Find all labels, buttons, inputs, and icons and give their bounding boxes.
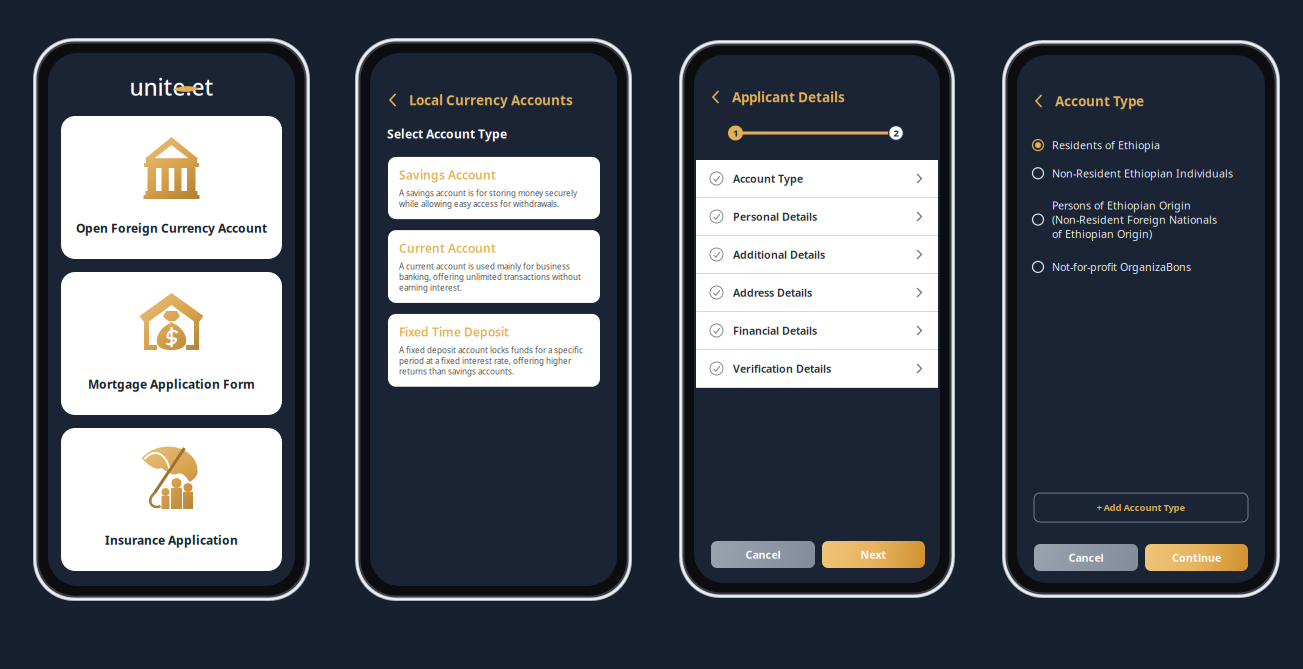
staticText: Select Account Type (387, 126, 507, 142)
button[interactable]: Insurance Application (61, 428, 282, 571)
button[interactable]: Verification Details (696, 350, 938, 388)
staticText: 1 (733, 127, 738, 139)
button[interactable]: Financial Details (696, 312, 938, 350)
button[interactable]: Account Type (696, 160, 938, 198)
button[interactable]: Not-for-profit OrganizaBons (1032, 260, 1246, 274)
staticText: Persons of Ethiopian Origin (Non-Residen… (1052, 198, 1217, 241)
staticText: + Add Account Type (1096, 501, 1185, 514)
staticText: Non-Resident Ethiopian Individuals (1052, 166, 1233, 180)
staticText: 2 (893, 127, 898, 139)
staticText: Applicant Details (732, 88, 845, 106)
staticText: Address Details (733, 285, 812, 300)
button[interactable]: Personal Details (696, 198, 938, 236)
button[interactable]: Current Account (388, 230, 600, 303)
staticText: Continue (1172, 550, 1221, 565)
staticText: Financial Details (733, 323, 817, 338)
staticText: Mortgage Application Form (88, 376, 255, 392)
button[interactable]: Cancel (1034, 544, 1138, 571)
staticText: Cancel (1068, 550, 1103, 565)
staticText: Account Type (1055, 92, 1144, 110)
button[interactable]: Cancel (711, 541, 815, 568)
button[interactable]: Open Foreign Currency Account (61, 116, 282, 259)
staticText: Residents of Ethiopia (1052, 138, 1160, 152)
button[interactable]: Mortgage Application Form (61, 272, 282, 415)
button[interactable]: Continue (1145, 544, 1248, 571)
button[interactable]: Address Details (696, 274, 938, 312)
staticText: Additional Details (733, 247, 825, 262)
button[interactable]: Additional Details (696, 236, 938, 274)
staticText: Open Foreign Currency Account (76, 220, 267, 236)
staticText: Account Type (733, 171, 803, 186)
button[interactable]: Back (385, 91, 401, 109)
staticText: A fixed deposit account locks funds for … (399, 345, 583, 377)
staticText: Next (860, 547, 886, 562)
button[interactable]: Fixed Time Deposit (388, 314, 600, 387)
staticText: Local Currency Accounts (409, 91, 573, 109)
button[interactable]: Next (822, 541, 925, 568)
button[interactable]: Residents of Ethiopia (1032, 138, 1246, 152)
staticText: Current Account (399, 240, 496, 256)
staticText: Fixed Time Deposit (399, 324, 509, 340)
staticText: Cancel (745, 547, 780, 562)
staticText: A savings account is for storing money s… (399, 188, 577, 209)
staticText: Insurance Application (105, 532, 238, 548)
staticText: A current account is used mainly for bus… (399, 261, 581, 293)
staticText: Not-for-profit OrganizaBons (1052, 260, 1191, 274)
staticText: Personal Details (733, 209, 817, 224)
button[interactable]: Savings Account (388, 157, 600, 219)
staticText: Savings Account (399, 167, 496, 183)
button[interactable]: Back (708, 88, 724, 106)
button[interactable]: Non-Resident Ethiopian Individuals (1032, 166, 1246, 180)
button[interactable]: Back (1031, 92, 1047, 110)
staticText: unite.et (129, 72, 213, 102)
button[interactable]: Persons of Ethiopian Origin (Non-Residen… (1032, 198, 1246, 241)
staticText: Verification Details (733, 361, 831, 376)
button[interactable]: + Add Account Type (1034, 493, 1248, 522)
